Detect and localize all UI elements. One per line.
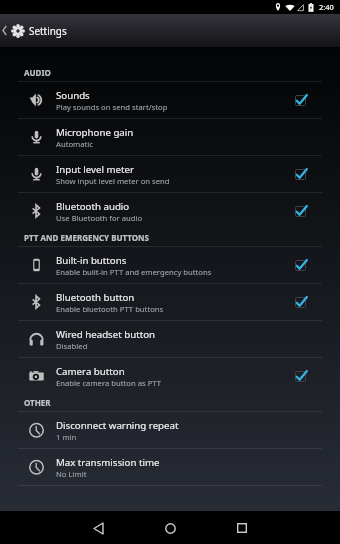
staticText: Sounds [56, 89, 90, 102]
staticText: Disabled [56, 341, 88, 351]
staticText: Built-in buttons [56, 254, 127, 267]
button[interactable]: Home [155, 513, 185, 543]
staticText: Wired headset button [56, 328, 156, 341]
button[interactable]: Input level meter [0, 156, 340, 193]
staticText: Enable bluetooth PTT buttons [56, 304, 164, 314]
button[interactable]: Camera button [0, 358, 340, 395]
staticText: Camera button [56, 365, 125, 378]
button[interactable]: Navigate up [0, 14, 73, 47]
staticText: OTHER [24, 397, 51, 408]
staticText: Enable built-in PTT and emergency button… [56, 267, 212, 277]
button[interactable]: Back [83, 513, 113, 543]
staticText: Microphone gain [56, 126, 134, 139]
staticText: Bluetooth button [56, 291, 135, 304]
staticText: Play sounds on send start/stop [56, 102, 168, 112]
staticText: No Limit [56, 469, 87, 479]
staticText: Show input level meter on send [56, 176, 170, 186]
staticText: Max transmission time [56, 456, 160, 469]
staticText: Settings [29, 24, 67, 37]
staticText: 2:40 [319, 2, 334, 12]
button[interactable]: Microphone gain [0, 119, 340, 156]
staticText: Use Bluetooth for audio [56, 213, 143, 223]
staticText: PTT AND EMERGENCY BUTTONS [24, 232, 150, 243]
button[interactable]: Recent apps [227, 513, 257, 543]
button[interactable]: Disconnect warning repeat [0, 412, 340, 449]
button[interactable]: Sounds [0, 82, 340, 119]
button[interactable]: Built-in buttons [0, 247, 340, 284]
staticText: Automatic [56, 139, 94, 149]
button[interactable]: Bluetooth button [0, 284, 340, 321]
button[interactable]: Bluetooth audio [0, 193, 340, 230]
staticText: Input level meter [56, 163, 134, 176]
staticText: Enable camera button as PTT [56, 378, 162, 388]
button[interactable]: Wired headset button [0, 321, 340, 358]
staticText: 1 min [56, 432, 77, 442]
button[interactable]: Max transmission time [0, 449, 340, 486]
staticText: Bluetooth audio [56, 200, 130, 213]
staticText: Disconnect warning repeat [56, 419, 179, 432]
staticText: AUDIO [24, 67, 51, 78]
